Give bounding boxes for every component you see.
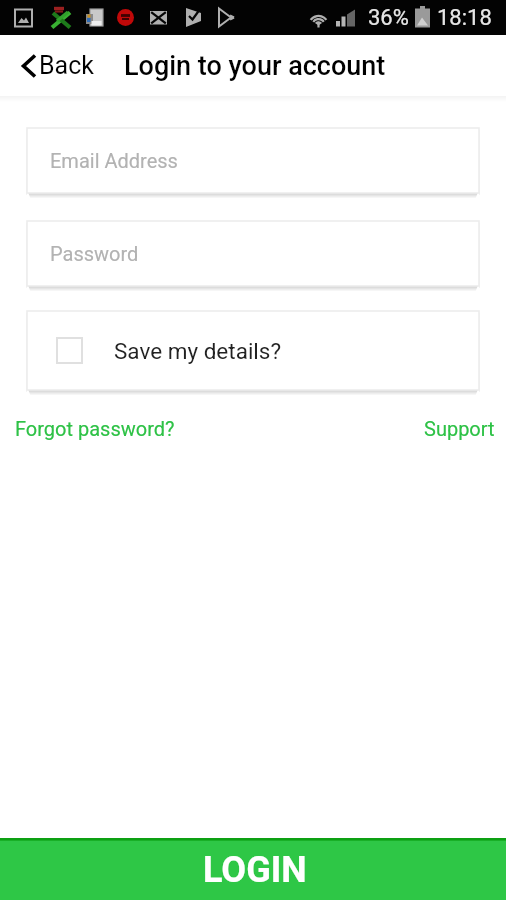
staticText: 18:18 (437, 5, 492, 31)
button[interactable]: Forgot password? (0, 417, 175, 440)
button[interactable]: Save my details checkbox (27, 311, 479, 390)
staticText: Password (50, 242, 139, 265)
button[interactable]: Email Address (27, 128, 479, 193)
staticText: Support (424, 417, 495, 440)
button[interactable]: Support (424, 417, 506, 440)
staticText: Save my details? (114, 338, 282, 364)
staticText: 36% (368, 5, 409, 31)
button[interactable]: Save my details checkbox (56, 337, 83, 364)
staticText: Forgot password? (15, 417, 175, 440)
button[interactable]: Back (0, 35, 106, 96)
button[interactable]: LOGIN (0, 838, 506, 900)
staticText: Login to your account (124, 50, 386, 82)
staticText: LOGIN (203, 849, 307, 891)
staticText: Email Address (50, 149, 178, 172)
staticText: Back (39, 51, 94, 80)
button[interactable]: Password (27, 221, 479, 286)
